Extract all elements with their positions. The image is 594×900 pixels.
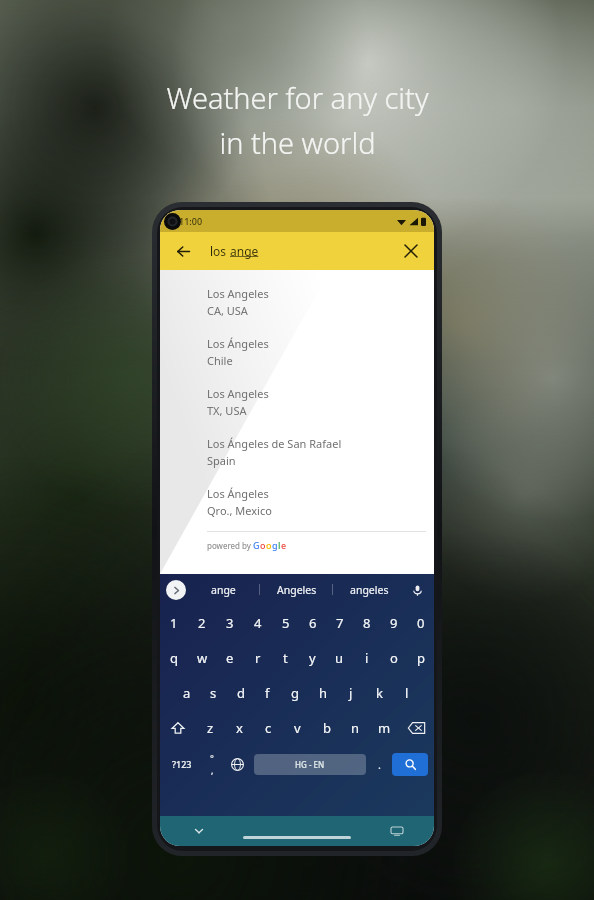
button[interactable]: 1 bbox=[160, 605, 188, 640]
button[interactable]: More suggestions bbox=[166, 580, 186, 600]
button[interactable]: 0 bbox=[407, 605, 434, 640]
button[interactable]: ?123 bbox=[164, 745, 200, 783]
staticText: HG - EN bbox=[295, 759, 325, 770]
staticText: q bbox=[170, 649, 178, 667]
staticText: ?123 bbox=[172, 758, 192, 770]
button[interactable]: Los Angeles bbox=[160, 280, 434, 325]
staticText: i bbox=[365, 649, 369, 667]
button[interactable]: 5 bbox=[272, 605, 299, 640]
staticText: los bbox=[210, 243, 230, 259]
button[interactable]: Voice input bbox=[406, 579, 428, 601]
button[interactable]: p bbox=[407, 640, 434, 675]
button[interactable]: i bbox=[353, 640, 380, 675]
button[interactable]: t bbox=[272, 640, 299, 675]
staticText: l bbox=[278, 539, 281, 551]
button[interactable]: Los Ángeles de San Rafael bbox=[160, 430, 434, 475]
staticText: powered by bbox=[207, 540, 253, 551]
button[interactable]: Back bbox=[168, 236, 198, 266]
staticText: z bbox=[207, 719, 214, 737]
button[interactable]: 6 bbox=[299, 605, 326, 640]
staticText: G bbox=[253, 539, 260, 551]
button[interactable]: Switch keyboard bbox=[386, 820, 408, 842]
staticText: f bbox=[265, 684, 270, 702]
button[interactable]: 2 bbox=[188, 605, 216, 640]
button[interactable]: w bbox=[188, 640, 216, 675]
button[interactable]: r bbox=[244, 640, 272, 675]
staticText: ange bbox=[211, 583, 236, 597]
button[interactable]: s bbox=[200, 675, 227, 710]
staticText: Chile bbox=[207, 353, 233, 368]
button[interactable]: k bbox=[365, 675, 393, 710]
staticText: t bbox=[283, 649, 288, 667]
staticText: o bbox=[260, 539, 266, 551]
button[interactable]: n bbox=[341, 710, 370, 745]
staticText: d bbox=[237, 684, 245, 702]
staticText: 9 bbox=[390, 614, 398, 632]
staticText: b bbox=[323, 719, 331, 737]
button[interactable]: e bbox=[216, 640, 244, 675]
button[interactable]: a bbox=[173, 675, 200, 710]
button[interactable]: Backspace bbox=[399, 710, 434, 745]
button[interactable]: v bbox=[283, 710, 312, 745]
button[interactable]: Los Angeles bbox=[160, 380, 434, 425]
button[interactable]: m bbox=[370, 710, 399, 745]
button[interactable]: b bbox=[312, 710, 341, 745]
staticText: u bbox=[335, 649, 344, 667]
button[interactable]: 9 bbox=[380, 605, 407, 640]
staticText: Los Ángeles bbox=[207, 486, 269, 501]
button[interactable]: q bbox=[160, 640, 188, 675]
button[interactable]: j bbox=[337, 675, 365, 710]
button[interactable]: Period bbox=[369, 745, 390, 783]
staticText: o bbox=[266, 539, 272, 551]
staticText: Spain bbox=[207, 453, 236, 468]
staticText: . bbox=[378, 757, 381, 772]
staticText: ange bbox=[230, 243, 259, 259]
staticText: g bbox=[291, 684, 299, 702]
button[interactable]: Search bbox=[392, 753, 428, 776]
button[interactable]: d bbox=[227, 675, 254, 710]
button[interactable]: 8 bbox=[353, 605, 380, 640]
button[interactable]: l bbox=[393, 675, 421, 710]
button[interactable]: 4 bbox=[244, 605, 272, 640]
button[interactable]: Shift bbox=[160, 710, 196, 745]
staticText: l bbox=[405, 684, 409, 702]
button[interactable]: 3 bbox=[216, 605, 244, 640]
button[interactable]: c bbox=[254, 710, 283, 745]
button[interactable]: h bbox=[309, 675, 337, 710]
staticText: x bbox=[236, 719, 243, 737]
button[interactable]: z bbox=[196, 710, 225, 745]
button[interactable]: HG - EN bbox=[254, 754, 366, 775]
button[interactable]: u bbox=[326, 640, 353, 675]
button[interactable]: Clear search bbox=[396, 236, 426, 266]
button[interactable]: Los Ángeles bbox=[160, 480, 434, 525]
button[interactable]: y bbox=[299, 640, 326, 675]
button[interactable]: Hide keyboard bbox=[188, 820, 210, 842]
button[interactable]: Change language bbox=[224, 745, 251, 783]
button[interactable]: 7 bbox=[326, 605, 353, 640]
staticText: Los Angeles bbox=[207, 386, 269, 401]
button[interactable]: Angeles bbox=[260, 574, 333, 605]
button[interactable]: g bbox=[281, 675, 309, 710]
button[interactable]: f bbox=[254, 675, 281, 710]
staticText: h bbox=[319, 684, 328, 702]
staticText: Angeles bbox=[277, 583, 317, 597]
staticText: s bbox=[210, 684, 217, 702]
staticText: Weather for any city bbox=[166, 78, 429, 117]
staticText: v bbox=[294, 719, 301, 737]
button[interactable]: Comma bbox=[200, 745, 224, 783]
staticText: a bbox=[183, 684, 191, 702]
button[interactable]: x bbox=[225, 710, 254, 745]
button[interactable]: angeles bbox=[333, 574, 406, 605]
staticText: m bbox=[378, 719, 391, 737]
staticText: k bbox=[376, 684, 383, 702]
staticText: 4 bbox=[254, 614, 262, 632]
staticText: Los Angeles bbox=[207, 286, 269, 301]
staticText: p bbox=[417, 649, 425, 667]
staticText: 11:00 bbox=[179, 215, 203, 227]
button[interactable]: Los Ángeles bbox=[160, 330, 434, 375]
staticText: 0 bbox=[417, 614, 425, 632]
staticText: e bbox=[226, 649, 234, 667]
staticText: 3 bbox=[226, 614, 234, 632]
button[interactable]: o bbox=[380, 640, 407, 675]
button[interactable]: ange bbox=[186, 574, 260, 605]
